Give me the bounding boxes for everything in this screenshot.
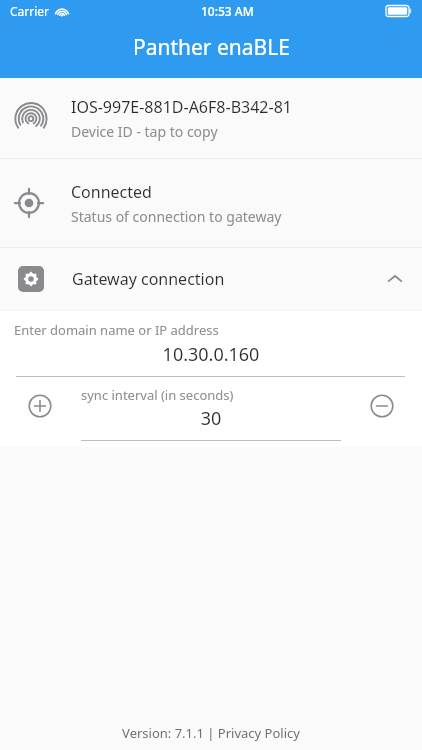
staticText: Connected <box>71 181 152 203</box>
button[interactable]: Gateway connection <box>0 248 422 310</box>
button[interactable]: Decrease <box>366 390 398 422</box>
staticText: IOS-997E-881D-A6F8-B342-81 <box>71 96 292 118</box>
staticText: 10.30.0.160 <box>0 342 422 367</box>
other: Collapse <box>386 270 404 288</box>
staticText: sync interval (in seconds) <box>81 386 234 404</box>
button[interactable]: Enter domain name or IP address <box>0 311 422 377</box>
staticText: Gateway connection <box>72 268 225 290</box>
staticText: Panther enaBLE <box>133 33 290 62</box>
staticText: Status of connection to gateway <box>71 207 282 226</box>
staticText: Carrier <box>10 3 50 19</box>
staticText: 10:53 AM <box>201 3 254 19</box>
staticText: Device ID - tap to copy <box>71 122 218 141</box>
button[interactable]: Connected <box>0 159 422 247</box>
staticText: Enter domain name or IP address <box>14 321 219 339</box>
staticText: Version: 7.1.1 | Privacy Policy <box>0 724 422 742</box>
button[interactable]: IOS-997E-881D-A6F8-B342-81 <box>0 78 422 158</box>
button[interactable]: Increase <box>24 390 56 422</box>
button[interactable]: sync interval (in seconds) <box>81 377 341 441</box>
staticText: 30 <box>81 406 341 431</box>
